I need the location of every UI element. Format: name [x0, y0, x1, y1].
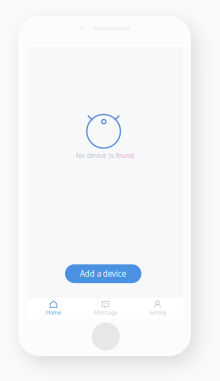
staticText: Home: [46, 309, 61, 316]
staticText: Message: [94, 309, 117, 316]
button[interactable]: Setting: [131, 298, 183, 319]
staticText: Add a device: [80, 268, 127, 279]
staticText: No device is found: [76, 151, 134, 160]
button[interactable]: Message: [79, 298, 131, 319]
staticText: Setting: [149, 309, 166, 316]
button[interactable]: Add a device: [65, 264, 141, 283]
button[interactable]: Home: [27, 298, 79, 319]
